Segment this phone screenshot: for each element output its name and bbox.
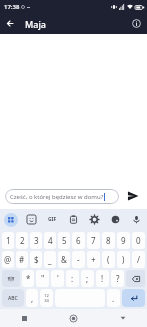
- staticText: (: [107, 254, 110, 265]
- staticText: ": [41, 273, 45, 284]
- staticText: ': [57, 273, 59, 284]
- button[interactable]: $: [30, 251, 42, 268]
- staticText: 12: [44, 293, 49, 298]
- button[interactable]: 3: [30, 232, 42, 249]
- staticText: ;: [86, 273, 89, 284]
- button[interactable]: Theme: [105, 209, 126, 230]
- button[interactable]: !: [96, 270, 109, 287]
- staticText: GIF: [48, 216, 57, 223]
- button[interactable]: Send: [124, 187, 142, 205]
- button[interactable]: Home: [49, 309, 98, 327]
- button[interactable]: Settings: [84, 209, 105, 230]
- staticText: 1: [6, 235, 11, 246]
- button[interactable]: 4: [44, 232, 56, 249]
- button[interactable]: Voice input: [126, 209, 147, 230]
- button[interactable]: :: [66, 270, 79, 287]
- button[interactable]: ?: [111, 270, 124, 287]
- staticText: ,: [31, 293, 34, 304]
- staticText: 5: [62, 235, 67, 246]
- staticText: 34: [44, 298, 49, 303]
- staticText: 3: [34, 235, 39, 246]
- button[interactable]: 6: [72, 232, 85, 249]
- staticText: !: [101, 273, 104, 284]
- button[interactable]: ABC: [2, 289, 24, 307]
- button[interactable]: Symbols: [2, 270, 20, 287]
- staticText: $: [34, 254, 39, 265]
- staticText: +: [91, 254, 96, 265]
- staticText: &: [61, 254, 67, 265]
- staticText: .: [112, 293, 115, 304]
- button[interactable]: *: [22, 270, 34, 287]
- button[interactable]: Enter: [122, 289, 145, 307]
- staticText: ): [122, 254, 125, 265]
- button[interactable]: -: [72, 251, 85, 268]
- button[interactable]: +: [87, 251, 100, 268]
- staticText: Maja: [25, 18, 46, 30]
- staticText: *: [26, 273, 31, 284]
- button[interactable]: Stickers: [21, 209, 42, 230]
- button[interactable]: 0: [132, 232, 145, 249]
- staticText: 7: [91, 235, 96, 246]
- button[interactable]: 9: [117, 232, 130, 249]
- button[interactable]: ;: [81, 270, 94, 287]
- button[interactable]: _: [44, 251, 56, 268]
- button[interactable]: 8: [102, 232, 115, 249]
- button[interactable]: Keyboard layouts: [4, 213, 18, 227]
- button[interactable]: 2: [16, 232, 28, 249]
- staticText: -: [77, 254, 80, 265]
- staticText: 17:38: [4, 3, 20, 11]
- button[interactable]: ": [36, 270, 49, 287]
- button[interactable]: @: [2, 251, 14, 268]
- button[interactable]: 1: [2, 232, 14, 249]
- staticText: 6: [76, 235, 81, 246]
- staticText: 9: [121, 235, 126, 246]
- staticText: @: [4, 254, 12, 265]
- button[interactable]: Backspace: [126, 270, 145, 287]
- staticText: ?: [116, 273, 120, 284]
- button[interactable]: (: [102, 251, 115, 268]
- button[interactable]: 5: [58, 232, 70, 249]
- button[interactable]: ,: [26, 289, 38, 307]
- staticText: 2: [20, 235, 25, 246]
- button[interactable]: Recent apps: [0, 309, 49, 327]
- button[interactable]: Fractions: [40, 289, 53, 307]
- button[interactable]: #: [16, 251, 28, 268]
- button[interactable]: GIF: [42, 209, 63, 230]
- staticText: _: [48, 254, 52, 265]
- button[interactable]: 7: [87, 232, 100, 249]
- staticText: 0: [136, 235, 141, 246]
- button[interactable]: Cześć, o której będziesz w domu?: [5, 189, 119, 204]
- button[interactable]: Info: [126, 13, 147, 34]
- staticText: /: [137, 254, 140, 265]
- button[interactable]: Back: [98, 309, 147, 327]
- button[interactable]: .: [107, 289, 120, 307]
- staticText: #: [19, 254, 25, 265]
- staticText: :: [71, 273, 74, 284]
- staticText: Cześć, o której będziesz w domu?: [10, 193, 104, 201]
- button[interactable]: ': [51, 270, 64, 287]
- button[interactable]: &: [58, 251, 70, 268]
- staticText: 8: [106, 235, 111, 246]
- button[interactable]: Back: [0, 13, 21, 34]
- button[interactable]: /: [132, 251, 145, 268]
- button[interactable]: Clipboard: [63, 209, 84, 230]
- staticText: ABC: [8, 295, 18, 302]
- staticText: 4: [48, 235, 53, 246]
- button[interactable]: ): [117, 251, 130, 268]
